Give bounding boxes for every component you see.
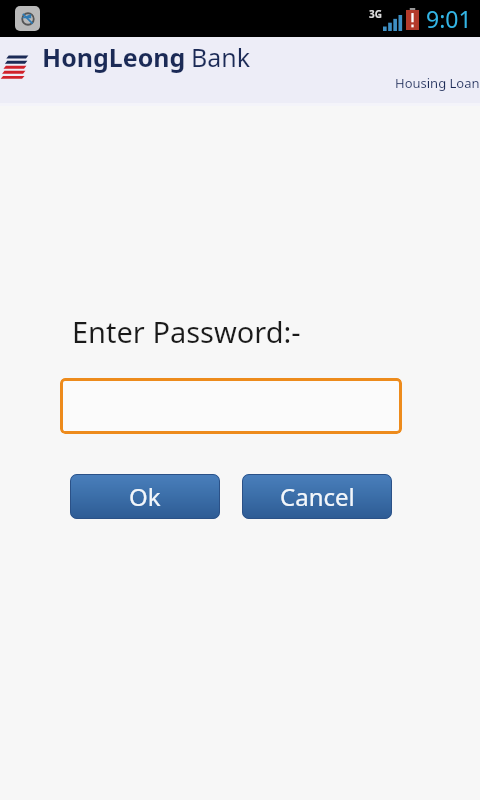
button[interactable]: Cancel (242, 474, 392, 519)
staticText: 9:01 (426, 3, 472, 34)
staticText: Bank (191, 40, 251, 74)
staticText: HongLeong (42, 40, 186, 74)
staticText: Housing Loan (395, 74, 480, 92)
staticText: 3G (369, 7, 382, 21)
staticText: Cancel (280, 480, 355, 513)
button[interactable]: Password input field (60, 378, 402, 434)
button[interactable]: Ok (70, 474, 220, 519)
staticText: Enter Password:- (72, 312, 301, 351)
staticText: Ok (129, 480, 161, 513)
